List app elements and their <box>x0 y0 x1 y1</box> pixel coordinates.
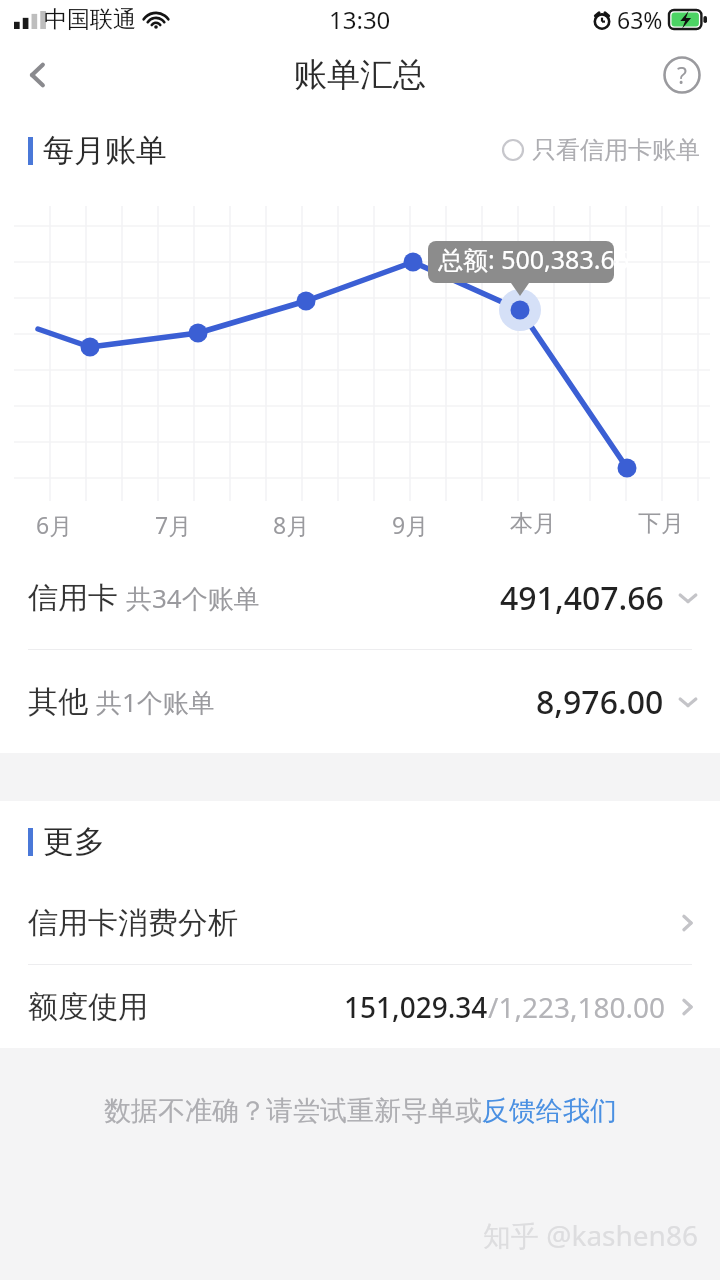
staticText: 总额: 500,383.66 <box>438 242 630 276</box>
staticText: 7月 <box>155 509 192 540</box>
button[interactable]: 只看信用卡账单 <box>494 127 720 173</box>
staticText: 下月 <box>638 509 684 538</box>
staticText: 更多 <box>43 822 105 861</box>
button[interactable]: 额度使用 <box>0 965 720 1048</box>
button[interactable]: Back <box>0 38 76 111</box>
staticText: 其他 <box>28 683 88 721</box>
staticText: 只看信用卡账单 <box>532 135 700 165</box>
staticText: 8,976.00 <box>536 680 664 724</box>
staticText: 共1个账单 <box>96 684 215 720</box>
staticText: 额度使用 <box>28 988 148 1026</box>
staticText: 6月 <box>36 509 73 540</box>
staticText: 每月账单 <box>43 131 167 170</box>
button[interactable]: 数据不准确？请尝试重新导单或 <box>104 1094 617 1128</box>
staticText: 账单汇总 <box>294 54 426 96</box>
button[interactable]: 其他 <box>0 650 720 753</box>
button[interactable]: 信用卡 <box>0 546 720 649</box>
staticText: 中国联通 <box>44 5 136 34</box>
staticText: 491,407.66 <box>500 576 664 620</box>
staticText: 151,029.34 <box>344 988 488 1026</box>
button[interactable]: 信用卡消费分析 <box>0 881 720 964</box>
staticText: 13:30 <box>329 3 391 36</box>
staticText: 数据不准确？请尝试重新导单或 <box>104 1094 482 1128</box>
staticText: ? <box>677 59 687 90</box>
staticText: 信用卡 <box>28 579 118 617</box>
staticText: 知乎 @kashen86 <box>483 1216 698 1254</box>
staticText: 63% <box>617 4 663 35</box>
staticText: 8月 <box>273 509 310 540</box>
staticText: 9月 <box>392 509 429 540</box>
staticText: /1,223,180.00 <box>488 988 666 1026</box>
button[interactable]: Help <box>644 38 720 111</box>
staticText: 信用卡消费分析 <box>28 904 238 942</box>
staticText: 共34个账单 <box>126 580 260 616</box>
staticText: 本月 <box>510 509 556 538</box>
staticText: 反馈给我们 <box>482 1094 617 1128</box>
